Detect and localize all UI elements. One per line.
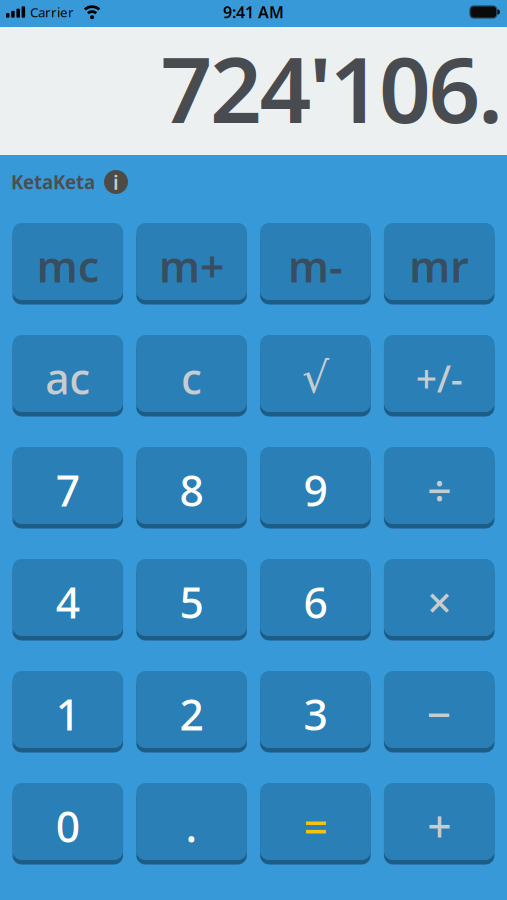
staticText: .: [186, 798, 198, 854]
button[interactable]: √: [260, 335, 371, 412]
staticText: √: [302, 354, 329, 402]
staticText: mc: [37, 238, 99, 294]
staticText: ×: [427, 574, 451, 630]
staticText: +: [427, 798, 451, 854]
button[interactable]: +: [384, 783, 494, 860]
staticText: 2: [180, 686, 204, 742]
staticText: 5: [180, 574, 204, 630]
staticText: KetaKeta: [11, 170, 95, 194]
staticText: m+: [159, 238, 224, 294]
staticText: i: [113, 169, 119, 195]
staticText: −: [427, 686, 452, 742]
staticText: 724'106.: [160, 28, 503, 148]
staticText: Carrier: [30, 3, 74, 21]
staticText: ÷: [427, 462, 451, 518]
staticText: c: [181, 350, 202, 406]
button[interactable]: 2: [136, 671, 247, 748]
staticText: 0: [56, 798, 80, 854]
staticText: 3: [303, 686, 327, 742]
button[interactable]: ÷: [384, 447, 494, 524]
staticText: 4: [56, 574, 80, 630]
button[interactable]: ac: [13, 335, 123, 412]
button[interactable]: 3: [260, 671, 371, 748]
button[interactable]: +/-: [384, 335, 494, 412]
button[interactable]: =: [260, 783, 371, 860]
button[interactable]: About KetaKeta: [103, 169, 129, 195]
staticText: m-: [288, 238, 343, 294]
button[interactable]: 4: [13, 559, 123, 636]
button[interactable]: c: [136, 335, 247, 412]
staticText: =: [303, 798, 327, 854]
button[interactable]: 5: [136, 559, 247, 636]
staticText: 7: [56, 462, 80, 518]
staticText: mr: [409, 238, 469, 294]
button[interactable]: mr: [384, 223, 494, 300]
button[interactable]: m-: [260, 223, 371, 300]
button[interactable]: 7: [13, 447, 123, 524]
button[interactable]: 9: [260, 447, 371, 524]
staticText: ac: [45, 350, 90, 406]
staticText: 1: [56, 686, 80, 742]
button[interactable]: .: [136, 783, 247, 860]
button[interactable]: mc: [13, 223, 123, 300]
button[interactable]: 1: [13, 671, 123, 748]
button[interactable]: −: [384, 671, 494, 748]
staticText: 6: [303, 574, 327, 630]
button[interactable]: 6: [260, 559, 371, 636]
staticText: +/-: [416, 353, 463, 403]
button[interactable]: m+: [136, 223, 247, 300]
staticText: 9: [303, 462, 327, 518]
staticText: 8: [180, 462, 204, 518]
button[interactable]: 0: [13, 783, 123, 860]
button[interactable]: 8: [136, 447, 247, 524]
staticText: 9:41 AM: [223, 1, 284, 23]
button[interactable]: ×: [384, 559, 494, 636]
